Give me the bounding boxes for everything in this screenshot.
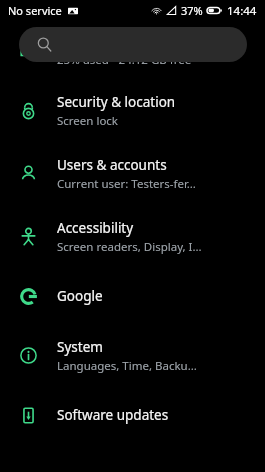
staticText: 37% xyxy=(181,3,203,18)
button[interactable]: Security & location xyxy=(0,79,265,142)
staticText: System xyxy=(57,338,103,356)
button[interactable]: Software updates xyxy=(0,387,265,443)
staticText: Accessibility xyxy=(57,219,134,237)
staticText: Security & location xyxy=(57,93,176,111)
staticText: Screen lock xyxy=(57,113,119,129)
staticText: 14:44 xyxy=(227,3,257,19)
staticText: Languages, Time, Backu… xyxy=(57,358,197,374)
button[interactable]: Users & accounts xyxy=(0,142,265,205)
staticText: 25% used - 24.12 GB free xyxy=(57,52,192,68)
button[interactable]: System xyxy=(0,324,265,387)
button[interactable]: Search settings xyxy=(19,27,247,62)
staticText: Current user: Testers-fer… xyxy=(57,176,196,192)
staticText: Software updates xyxy=(57,406,169,424)
button[interactable]: Storage xyxy=(0,21,265,79)
staticText: Screen readers, Display, I… xyxy=(57,239,202,255)
button[interactable]: Google xyxy=(0,268,265,324)
button[interactable]: Accessibility xyxy=(0,205,265,268)
staticText: Google xyxy=(57,287,103,305)
staticText: No service xyxy=(8,3,62,18)
staticText: Users & accounts xyxy=(57,156,167,174)
